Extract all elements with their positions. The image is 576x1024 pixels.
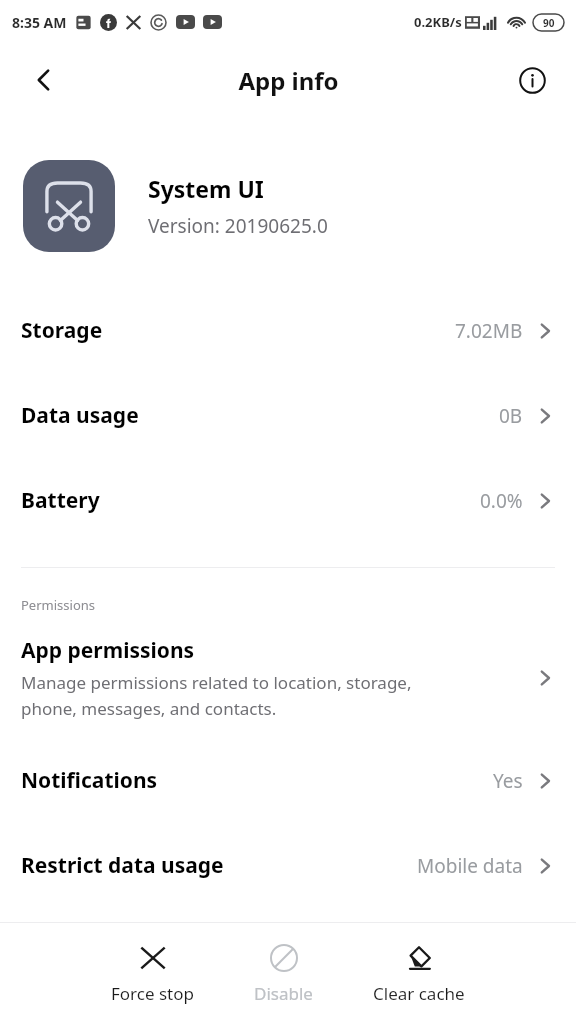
button[interactable]: Back: [20, 56, 68, 104]
button[interactable]: Clear cache: [363, 939, 475, 1009]
staticText: Mobile data: [417, 853, 523, 879]
staticText: 8:35 AM: [12, 13, 67, 32]
staticText: Force stop: [111, 982, 194, 1005]
staticText: App info: [238, 64, 339, 97]
staticText: Clear cache: [373, 982, 465, 1005]
staticText: Battery: [21, 486, 480, 515]
staticText: Data usage: [21, 401, 499, 430]
staticText: 90: [543, 16, 555, 30]
staticText: Version: 20190625.0: [148, 213, 328, 239]
staticText: Manage permissions related to location, …: [21, 671, 412, 720]
staticText: Yes: [493, 768, 523, 794]
staticText: Restrict data usage: [21, 851, 417, 880]
staticText: Notifications: [21, 766, 493, 795]
staticText: 0B: [499, 403, 523, 429]
staticText: Disable: [254, 982, 313, 1005]
button[interactable]: Restrict data usage: [0, 823, 576, 908]
staticText: 0.2KB/s: [414, 13, 462, 31]
button[interactable]: Disable: [244, 939, 323, 1009]
staticText: 7.02MB: [455, 318, 523, 344]
staticText: Storage: [21, 316, 455, 345]
button[interactable]: Storage: [0, 288, 576, 373]
staticText: 0.0%: [480, 488, 523, 514]
staticText: System UI: [148, 173, 264, 204]
button[interactable]: App permissions: [0, 636, 576, 720]
button[interactable]: Notifications: [0, 738, 576, 823]
button[interactable]: Battery: [0, 458, 576, 543]
button[interactable]: App info details: [508, 56, 556, 104]
staticText: Permissions: [21, 596, 96, 614]
button[interactable]: Force stop: [101, 939, 204, 1009]
staticText: App permissions: [21, 636, 195, 665]
button[interactable]: Data usage: [0, 373, 576, 458]
